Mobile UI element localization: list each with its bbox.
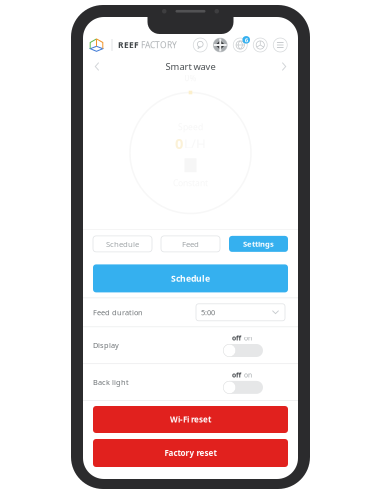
- staticText: Settings: [243, 239, 274, 249]
- staticText: on: [244, 333, 252, 342]
- button[interactable]: Schedule: [93, 264, 288, 292]
- staticText: Schedule: [171, 272, 210, 284]
- button[interactable]: Toggle: [223, 370, 263, 394]
- button[interactable]: Messages: [192, 37, 208, 53]
- button[interactable]: Feed duration: [83, 298, 298, 326]
- staticText: Schedule: [106, 239, 139, 249]
- staticText: 6: [245, 36, 248, 44]
- staticText: Display: [93, 340, 119, 350]
- button[interactable]: Devices: [212, 37, 228, 53]
- staticText: on: [244, 370, 252, 379]
- staticText: off: [232, 333, 241, 342]
- button[interactable]: Feed: [161, 236, 220, 252]
- staticText: Smart wave: [165, 60, 215, 73]
- staticText: FACTORY: [139, 39, 177, 51]
- button[interactable]: Schedule: [93, 236, 152, 252]
- button[interactable]: Factory reset: [93, 439, 288, 467]
- staticText: 0: [175, 133, 183, 153]
- staticText: REEF: [118, 39, 139, 51]
- button[interactable]: Statistics: [252, 37, 268, 53]
- staticText: Back light: [93, 377, 129, 387]
- button[interactable]: Network: [232, 37, 248, 53]
- button[interactable]: Settings: [229, 236, 288, 252]
- button[interactable]: Previous device: [88, 57, 106, 75]
- button[interactable]: Toggle: [223, 333, 263, 357]
- staticText: Factory reset: [164, 448, 216, 458]
- button[interactable]: Wi-Fi reset: [93, 406, 288, 433]
- staticText: Wi-Fi reset: [170, 414, 211, 425]
- button[interactable]: Reef Factory: [89, 37, 177, 52]
- button[interactable]: Next device: [275, 57, 293, 75]
- staticText: off: [232, 370, 241, 379]
- staticText: Feed duration: [93, 307, 143, 317]
- staticText: Feed: [182, 239, 199, 249]
- button[interactable]: Menu: [272, 37, 288, 53]
- staticText: 5:00: [201, 307, 215, 317]
